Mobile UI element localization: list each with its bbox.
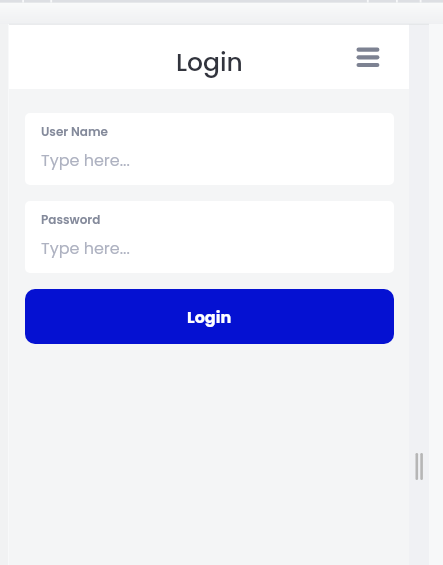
button[interactable]: Login xyxy=(25,289,394,344)
button[interactable]: Password xyxy=(25,201,394,273)
staticText: Password xyxy=(41,211,101,228)
staticText: Login xyxy=(176,45,243,80)
staticText: Type here... xyxy=(41,149,130,171)
button[interactable]: User Name xyxy=(25,113,394,185)
staticText: Type here... xyxy=(41,237,130,259)
staticText: User Name xyxy=(41,123,108,140)
button[interactable]: Open navigation menu xyxy=(348,31,388,71)
staticText: Login xyxy=(187,306,232,328)
